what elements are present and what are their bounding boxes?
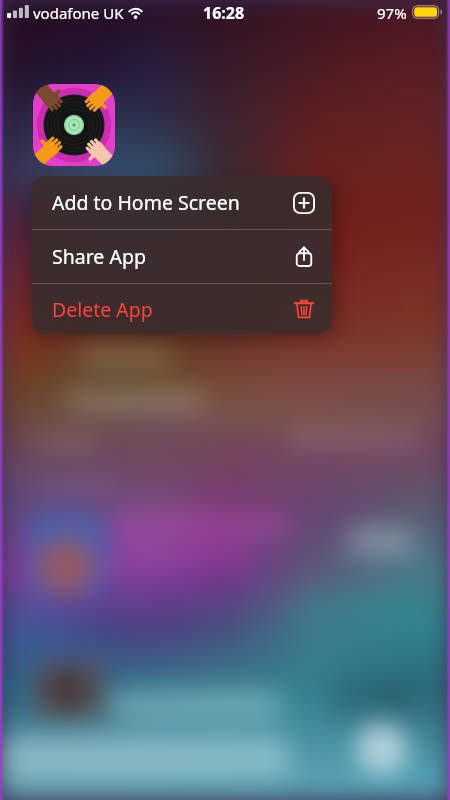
- button[interactable]: Add to Home Screen: [32, 176, 332, 229]
- other: Share App: [293, 246, 315, 268]
- staticText: 16:28: [203, 2, 245, 24]
- button[interactable]: Share App: [32, 230, 332, 283]
- staticText: Delete App: [52, 296, 153, 323]
- staticText: Share App: [52, 243, 146, 270]
- other: Add to Home Screen: [293, 192, 315, 214]
- other: Delete App: [293, 298, 315, 320]
- button[interactable]: Delete App: [32, 284, 332, 334]
- staticText: 97%: [377, 3, 407, 23]
- button[interactable]: App icon: [33, 84, 115, 166]
- staticText: Add to Home Screen: [52, 189, 240, 216]
- staticText: vodafone UK: [33, 3, 124, 23]
